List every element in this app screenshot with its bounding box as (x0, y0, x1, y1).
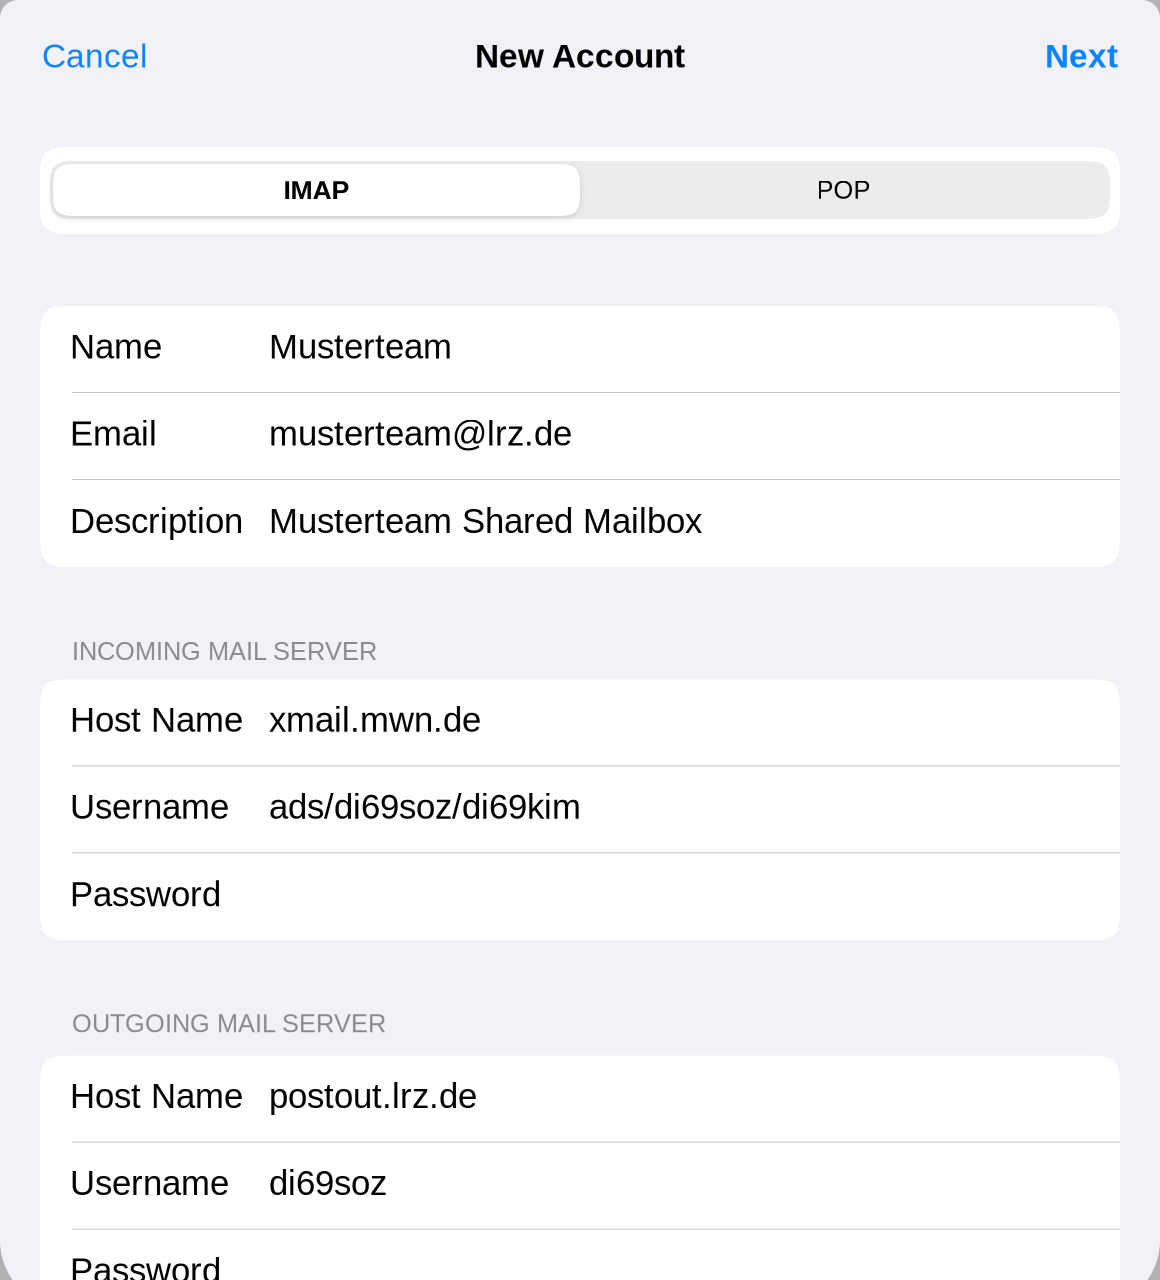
staticText: INCOMING MAIL SERVER (72, 637, 377, 665)
staticText: Musterteam Shared Mailbox (269, 502, 702, 540)
button[interactable]: Email (40, 393, 1120, 480)
button[interactable]: Host Name (40, 1056, 1120, 1143)
staticText: Name (70, 327, 162, 366)
staticText: OUTGOING MAIL SERVER (72, 1009, 386, 1038)
staticText: di69soz (269, 1164, 387, 1202)
staticText: postout.lrz.de (269, 1077, 477, 1115)
staticText: Description (70, 502, 243, 540)
staticText: musterteam@lrz.de (269, 414, 572, 453)
staticText: Host Name (70, 700, 243, 739)
staticText: Password (70, 1251, 221, 1280)
button[interactable]: Name (40, 306, 1120, 393)
staticText: xmail.mwn.de (269, 700, 481, 739)
button[interactable]: Host Name (40, 679, 1120, 766)
staticText: ads/di69soz/di69kim (269, 787, 581, 826)
button[interactable]: Cancel (0, 0, 177, 112)
button[interactable]: Username (40, 1143, 1120, 1230)
staticText: POP (816, 176, 870, 204)
staticText: Username (70, 787, 229, 826)
staticText: Username (70, 1164, 229, 1202)
staticText: Email (70, 414, 157, 453)
staticText: Next (1045, 37, 1118, 75)
button[interactable]: IMAP (53, 164, 580, 216)
button[interactable]: Description (40, 480, 1120, 567)
staticText: New Account (475, 37, 685, 75)
button[interactable]: Next (1015, 0, 1160, 112)
button[interactable]: Username (40, 766, 1120, 853)
staticText: Password (70, 875, 221, 914)
staticText: Musterteam (269, 327, 452, 366)
button[interactable]: Password (40, 1230, 1120, 1280)
button[interactable]: POP (580, 164, 1107, 216)
staticText: Host Name (70, 1077, 243, 1115)
staticText: IMAP (283, 175, 349, 205)
button[interactable]: Password (40, 853, 1120, 940)
staticText: Cancel (42, 37, 147, 75)
